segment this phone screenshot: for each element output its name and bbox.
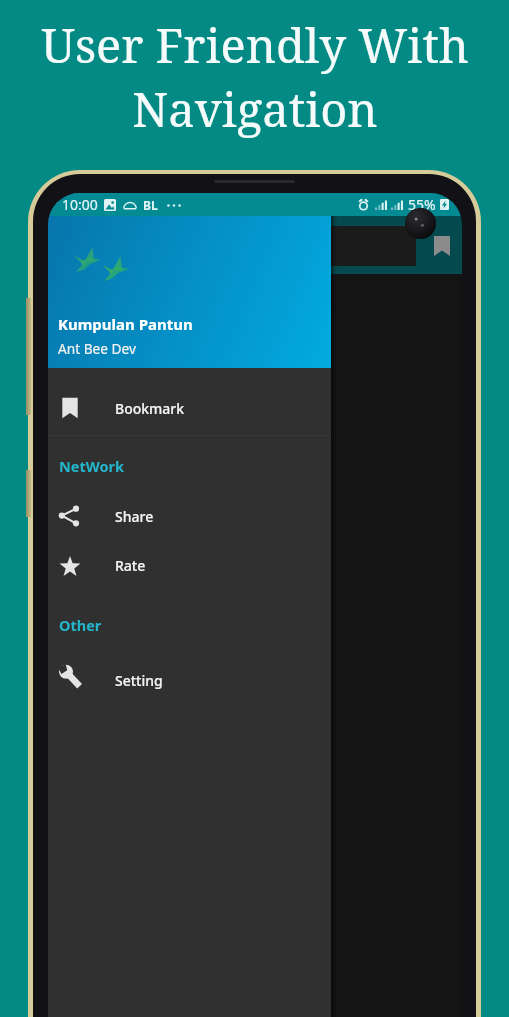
button[interactable]: Share [48,495,331,537]
button[interactable]: Rate [48,544,331,586]
staticText: Rate [115,556,146,575]
button[interactable]: Bookmark [48,387,331,429]
staticText: Setting [115,671,163,690]
staticText: Other [59,615,102,635]
button[interactable]: Setting [48,659,331,701]
staticText: Kumpulan Pantun [58,314,193,334]
staticText: User Friendly With [41,13,469,77]
button[interactable]: Bookmark [428,234,456,258]
staticText: Navigation [132,77,378,141]
staticText: Share [115,507,154,526]
staticText: Bookmark [115,399,185,418]
staticText: 55% [408,195,436,214]
staticText: Ant Bee Dev [58,339,136,358]
staticText: NetWork [59,456,125,476]
staticText: BL [143,197,158,213]
staticText: 10:00 [62,195,98,214]
